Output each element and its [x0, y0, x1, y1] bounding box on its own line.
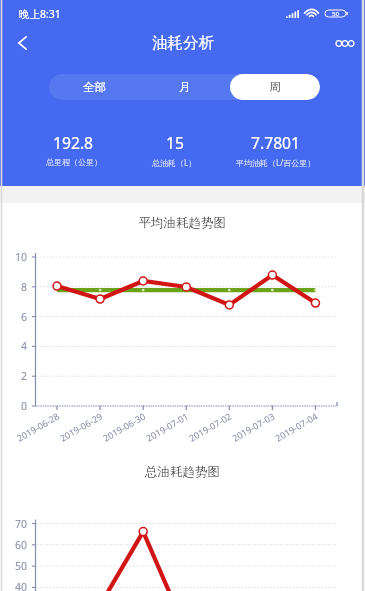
staticText: 平均油耗（L/百公里） [236, 157, 316, 168]
staticText: 全部 [83, 80, 106, 94]
button[interactable]: 全部 [49, 74, 140, 100]
staticText: 总里程（公里） [46, 157, 102, 167]
staticText: 50 [332, 10, 339, 17]
staticText: 周 [269, 80, 281, 94]
button[interactable]: 月 [140, 74, 230, 100]
staticText: 7.7801 [251, 132, 301, 153]
staticText: 月 [179, 80, 191, 94]
button[interactable]: More options [325, 24, 365, 62]
staticText: 15 [166, 132, 184, 153]
staticText: 油耗分析 [152, 33, 214, 53]
staticText: 总油耗（L） [152, 157, 197, 168]
staticText: 晚上8:31 [19, 7, 61, 21]
staticText: 192.8 [53, 132, 94, 153]
button[interactable]: 周 [230, 74, 320, 100]
button[interactable]: Back [0, 24, 44, 62]
